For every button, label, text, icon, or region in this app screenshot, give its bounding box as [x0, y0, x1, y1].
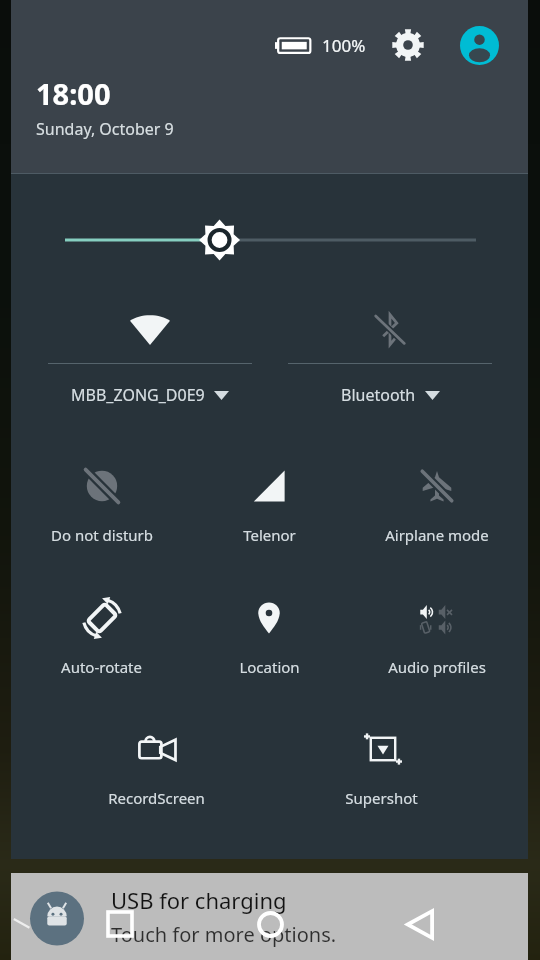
- button[interactable]: Auto-rotate: [18, 596, 185, 677]
- staticText: Airplane mode: [385, 525, 489, 545]
- button[interactable]: Back: [345, 888, 495, 960]
- button[interactable]: Do not disturb: [18, 464, 185, 545]
- button[interactable]: User profile: [459, 25, 499, 65]
- button[interactable]: USB for charging: [11, 873, 528, 960]
- staticText: 18:00: [36, 74, 111, 113]
- staticText: USB for charging: [111, 885, 287, 915]
- button[interactable]: Location: [185, 596, 353, 677]
- button[interactable]: Home: [195, 888, 345, 960]
- staticText: Telenor: [243, 525, 296, 545]
- staticText: Bluetooth: [341, 384, 416, 406]
- staticText: 100%: [322, 34, 366, 57]
- button[interactable]: Airplane mode: [353, 464, 521, 545]
- staticText: Supershot: [345, 788, 418, 808]
- button[interactable]: Supershot: [269, 727, 494, 808]
- button[interactable]: Audio profiles: [353, 596, 521, 677]
- button[interactable]: Recent apps: [45, 888, 195, 960]
- button[interactable]: Brightness: [11, 214, 528, 266]
- staticText: RecordScreen: [108, 788, 205, 808]
- staticText: Do not disturb: [51, 525, 153, 545]
- button[interactable]: Telenor: [185, 464, 353, 545]
- staticText: Audio profiles: [388, 657, 486, 677]
- button[interactable]: Bluetooth: [270, 295, 510, 406]
- staticText: Location: [239, 657, 300, 677]
- staticText: MBB_ZONG_D0E9: [71, 384, 205, 406]
- staticText: Sunday, October 9: [36, 118, 174, 140]
- staticText: Auto-rotate: [61, 657, 142, 677]
- button[interactable]: RecordScreen: [44, 727, 269, 808]
- button[interactable]: Settings: [388, 25, 428, 65]
- button[interactable]: MBB_ZONG_D0E9: [30, 295, 270, 406]
- staticText: Touch for more options.: [111, 921, 337, 948]
